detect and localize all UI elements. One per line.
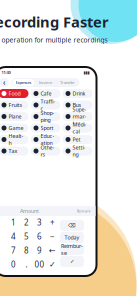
button[interactable]: Food <box>0 89 28 98</box>
button[interactable]: Income <box>34 79 56 86</box>
staticText: One operation for multiple recordings <box>0 35 107 44</box>
staticText: Expenses <box>15 80 31 85</box>
button[interactable]: Tax <box>0 146 28 155</box>
button[interactable]: ← <box>46 244 59 257</box>
button[interactable]: Cafe <box>30 89 60 98</box>
staticText: + <box>50 217 55 228</box>
staticText: 11:30 <box>1 70 10 75</box>
staticText: 1 <box>11 217 16 228</box>
button[interactable]: 7 <box>7 244 20 257</box>
staticText: Today <box>64 234 79 241</box>
button[interactable]: 00 <box>33 258 46 271</box>
button[interactable]: 0 <box>7 258 20 271</box>
button[interactable]: Traffic <box>30 100 60 109</box>
button[interactable]: Setting <box>62 146 92 155</box>
staticText: ‹ <box>3 77 5 88</box>
staticText: ⌫ <box>68 222 76 229</box>
staticText: Traffic <box>40 98 55 112</box>
button[interactable]: Today <box>60 232 84 243</box>
staticText: 8 <box>24 245 29 256</box>
button[interactable]: Plane <box>0 112 28 121</box>
button[interactable]: Back <box>0 78 8 87</box>
button[interactable]: 5 <box>20 230 33 243</box>
button[interactable]: Fruits <box>0 100 28 109</box>
staticText: Sport <box>40 124 53 132</box>
button[interactable]: ✓ <box>60 256 84 267</box>
staticText: − <box>50 231 55 242</box>
button[interactable]: Medical <box>62 123 92 132</box>
staticText: Game <box>8 124 23 132</box>
staticText: 7 <box>11 245 16 256</box>
staticText: 0 <box>11 259 16 270</box>
staticText: Fruits <box>8 101 22 109</box>
button[interactable]: Others <box>30 146 60 155</box>
button[interactable]: − <box>46 230 59 243</box>
staticText: Drink <box>72 90 85 97</box>
button[interactable]: ⌫ <box>60 220 84 231</box>
staticText: Recording Faster <box>0 12 109 31</box>
staticText: Remark <box>76 208 90 214</box>
staticText: Shopping <box>40 109 54 124</box>
button[interactable]: Transfer <box>56 79 78 86</box>
staticText: 2 <box>24 217 29 228</box>
staticText: Education <box>40 132 54 147</box>
staticText: 9 <box>37 245 42 256</box>
button[interactable]: + <box>46 216 59 229</box>
staticText: ✓ <box>49 260 56 269</box>
button[interactable]: ✓ <box>46 258 59 271</box>
button[interactable]: 6 <box>33 230 46 243</box>
button[interactable]: Expenses <box>12 79 34 86</box>
button[interactable]: Supermarket <box>62 112 92 121</box>
staticText: 00 <box>34 259 44 270</box>
staticText: Bus <box>72 101 81 109</box>
staticText: 4 <box>11 231 16 242</box>
staticText: Plane <box>8 113 21 120</box>
staticText: 3 <box>37 217 42 228</box>
staticText: Cafe <box>40 90 51 97</box>
button[interactable]: 1 <box>7 216 20 229</box>
button[interactable]: Reimburse <box>60 244 84 255</box>
button[interactable]: 8 <box>20 244 33 257</box>
button[interactable]: Health <box>0 135 28 144</box>
button[interactable]: 4 <box>7 230 20 243</box>
staticText: Health <box>8 132 23 147</box>
staticText: Medical <box>72 121 86 135</box>
button[interactable]: 2 <box>20 216 33 229</box>
staticText: 5 <box>24 231 29 242</box>
staticText: Tax <box>8 147 17 155</box>
staticText: Supermarket <box>72 106 86 127</box>
staticText: . <box>25 259 27 270</box>
staticText: Income <box>39 80 52 85</box>
staticText: Food <box>8 90 20 97</box>
button[interactable]: Education <box>30 135 60 144</box>
staticText: Pet <box>72 136 80 143</box>
button[interactable]: Pet <box>62 135 92 144</box>
staticText: Transfer <box>60 80 75 85</box>
button[interactable]: Shopping <box>30 112 60 121</box>
staticText: Amount <box>20 207 39 215</box>
button[interactable]: Bus <box>62 100 92 109</box>
staticText: Others <box>40 144 54 158</box>
staticText: Setting <box>72 144 85 158</box>
staticText: ← <box>49 246 56 255</box>
button[interactable]: Game <box>0 123 28 132</box>
button[interactable]: Sport <box>30 123 60 132</box>
staticText: ▮▮▮ <box>83 70 89 75</box>
staticText: 6 <box>37 231 42 242</box>
staticText: Reimburse <box>61 242 83 257</box>
button[interactable]: Drink <box>62 89 92 98</box>
button[interactable]: 9 <box>33 244 46 257</box>
button[interactable]: 3 <box>33 216 46 229</box>
button[interactable]: . <box>20 258 33 271</box>
staticText: ✓ <box>70 258 74 265</box>
